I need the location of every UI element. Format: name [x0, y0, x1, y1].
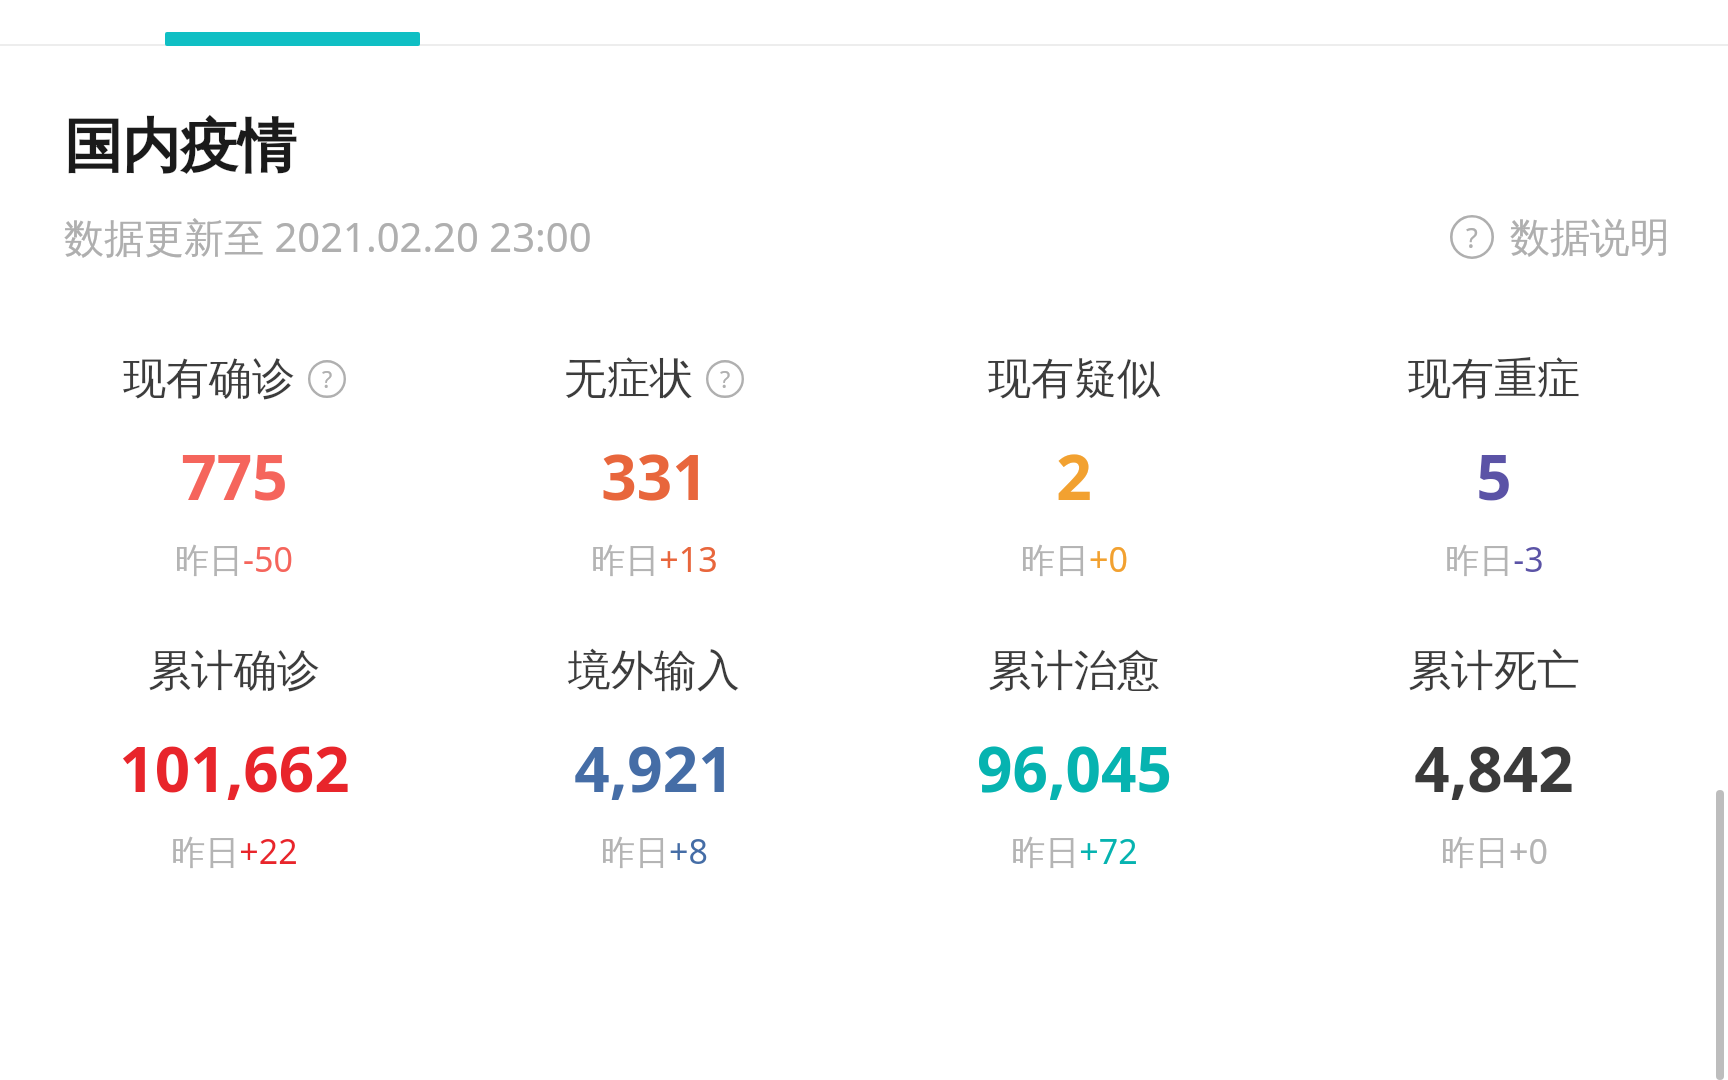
staticText: 2 — [1056, 434, 1092, 518]
staticText: 昨日+72 — [1011, 828, 1138, 874]
staticText: 昨日+0 — [1441, 828, 1548, 874]
staticText: 现有确诊 — [123, 352, 295, 406]
staticText: 331 — [601, 434, 708, 518]
button[interactable]: 境外输入 — [444, 644, 864, 874]
staticText: 现有重症 — [1408, 352, 1580, 406]
staticText: 累计确诊 — [148, 644, 320, 698]
button[interactable]: 累计死亡 — [1284, 644, 1704, 874]
staticText: 101,662 — [119, 726, 350, 810]
button[interactable]: 现有确诊 — [24, 352, 444, 582]
staticText: 5 — [1476, 434, 1512, 518]
staticText: 国内疫情 — [64, 110, 296, 183]
staticText: ? — [322, 363, 333, 395]
staticText: 数据说明 — [1510, 212, 1670, 262]
button[interactable]: 无症状 — [444, 352, 864, 582]
staticText: 累计治愈 — [988, 644, 1160, 698]
staticText: 昨日+13 — [591, 536, 718, 582]
staticText: 累计死亡 — [1408, 644, 1580, 698]
staticText: 4,921 — [574, 726, 734, 810]
button[interactable]: 现有重症 — [1284, 352, 1704, 582]
staticText: ? — [1466, 219, 1478, 256]
staticText: 4,842 — [1414, 726, 1574, 810]
staticText: 昨日+0 — [1021, 536, 1128, 582]
other: 帮助说明 — [1450, 215, 1494, 259]
staticText: 昨日+22 — [171, 828, 298, 874]
staticText: 无症状 — [564, 352, 693, 406]
staticText: 昨日-3 — [1445, 536, 1544, 582]
staticText: 昨日-50 — [175, 536, 293, 582]
button[interactable]: 累计确诊 — [24, 644, 444, 874]
button[interactable]: 帮助说明 — [1450, 212, 1670, 262]
staticText: 昨日+8 — [601, 828, 708, 874]
staticText: 775 — [181, 434, 288, 518]
staticText: ? — [720, 363, 731, 395]
staticText: 境外输入 — [568, 644, 740, 698]
staticText: 数据更新至 2021.02.20 23:00 — [64, 209, 592, 264]
other: 帮助说明 — [706, 360, 744, 398]
staticText: 96,045 — [977, 726, 1172, 810]
button[interactable] — [165, 32, 420, 46]
staticText: 现有疑似 — [988, 352, 1160, 406]
button[interactable]: 现有疑似 — [864, 352, 1284, 582]
other: 帮助说明 — [308, 360, 346, 398]
button[interactable]: 累计治愈 — [864, 644, 1284, 874]
